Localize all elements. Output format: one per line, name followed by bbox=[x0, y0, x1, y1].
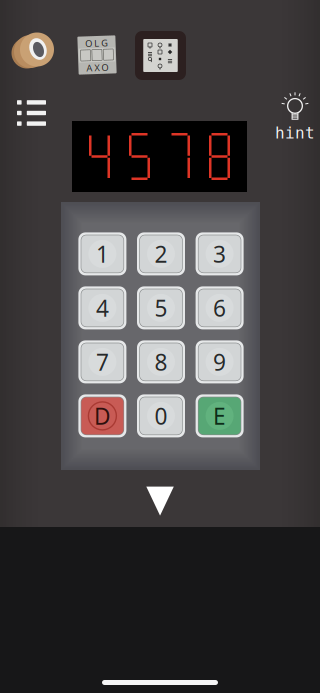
button[interactable]: 8 bbox=[137, 340, 185, 383]
staticText: 1 bbox=[96, 239, 109, 269]
button[interactable]: Note bbox=[78, 36, 116, 74]
staticText: 6 bbox=[213, 293, 226, 323]
staticText: 8 bbox=[154, 347, 167, 377]
staticText: E bbox=[213, 401, 226, 431]
button[interactable]: 6 bbox=[196, 286, 244, 329]
staticText: 7 bbox=[96, 347, 109, 377]
staticText: 9 bbox=[213, 347, 226, 377]
staticText: A X O bbox=[86, 61, 108, 74]
button[interactable]: 4 bbox=[78, 286, 126, 329]
button[interactable]: Go down bbox=[146, 487, 174, 516]
staticText: hint bbox=[275, 124, 315, 142]
staticText: 5 bbox=[154, 293, 167, 323]
button[interactable]: 3 bbox=[196, 232, 244, 275]
staticText: 2 bbox=[154, 239, 167, 269]
button[interactable]: 7 bbox=[78, 340, 126, 383]
staticText: D bbox=[94, 401, 111, 431]
button[interactable]: 1 bbox=[78, 232, 126, 275]
button[interactable]: E bbox=[196, 394, 244, 437]
button[interactable]: hint bbox=[269, 90, 320, 142]
button[interactable]: 9 bbox=[196, 340, 244, 383]
button[interactable]: 5 bbox=[137, 286, 185, 329]
staticText: 0 bbox=[154, 401, 167, 431]
button[interactable]: Menu bbox=[13, 96, 49, 130]
staticText: O L G bbox=[85, 37, 108, 49]
staticText: 3 bbox=[213, 239, 226, 269]
button[interactable]: Tape bbox=[11, 28, 57, 72]
button[interactable]: Selected item bbox=[135, 31, 186, 80]
button[interactable]: 0 bbox=[137, 394, 185, 437]
button[interactable]: 2 bbox=[137, 232, 185, 275]
button[interactable]: D bbox=[78, 394, 126, 437]
staticText: 4 bbox=[96, 293, 109, 323]
